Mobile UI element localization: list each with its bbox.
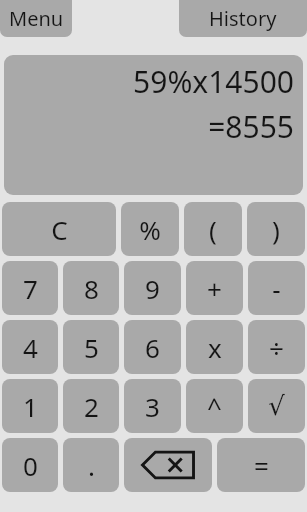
- staticText: 59%x14500: [133, 61, 294, 102]
- button[interactable]: 8: [63, 261, 119, 315]
- staticText: (: [209, 212, 217, 247]
- button[interactable]: %: [121, 202, 179, 256]
- button[interactable]: History: [179, 0, 307, 37]
- staticText: History: [209, 5, 277, 32]
- staticText: 1: [23, 389, 38, 424]
- button[interactable]: 1: [2, 379, 58, 433]
- staticText: +: [207, 271, 222, 306]
- staticText: 0: [23, 448, 38, 483]
- staticText: C: [51, 212, 68, 247]
- button[interactable]: 2: [63, 379, 119, 433]
- staticText: √: [268, 391, 285, 421]
- staticText: Menu: [9, 5, 64, 32]
- button[interactable]: 7: [2, 261, 58, 315]
- button[interactable]: 5: [63, 320, 119, 374]
- button[interactable]: 9: [124, 261, 181, 315]
- button[interactable]: √: [248, 379, 305, 433]
- button[interactable]: ): [247, 202, 305, 256]
- staticText: 9: [145, 271, 160, 306]
- staticText: 6: [145, 330, 160, 365]
- button[interactable]: =: [217, 438, 305, 492]
- button[interactable]: C: [2, 202, 116, 256]
- button[interactable]: Backspace: [124, 438, 212, 492]
- staticText: -: [272, 271, 281, 306]
- button[interactable]: Menu: [0, 0, 72, 37]
- staticText: 5: [84, 330, 99, 365]
- staticText: 3: [145, 389, 160, 424]
- button[interactable]: (: [184, 202, 242, 256]
- button[interactable]: 4: [2, 320, 58, 374]
- staticText: .: [88, 448, 95, 483]
- staticText: ): [272, 212, 280, 247]
- staticText: 7: [23, 271, 38, 306]
- staticText: ^: [207, 389, 222, 424]
- staticText: 8: [84, 271, 99, 306]
- button[interactable]: ^: [186, 379, 243, 433]
- staticText: 4: [23, 330, 38, 365]
- button[interactable]: x: [186, 320, 243, 374]
- staticText: =8555: [208, 106, 294, 147]
- staticText: ÷: [269, 330, 284, 365]
- button[interactable]: 6: [124, 320, 181, 374]
- button[interactable]: -: [248, 261, 305, 315]
- button[interactable]: 3: [124, 379, 181, 433]
- staticText: %: [139, 212, 161, 247]
- button[interactable]: 0: [2, 438, 58, 492]
- button[interactable]: ÷: [248, 320, 305, 374]
- staticText: =: [254, 448, 269, 483]
- button[interactable]: .: [63, 438, 119, 492]
- button[interactable]: +: [186, 261, 243, 315]
- staticText: 2: [84, 389, 99, 424]
- staticText: x: [208, 330, 222, 365]
